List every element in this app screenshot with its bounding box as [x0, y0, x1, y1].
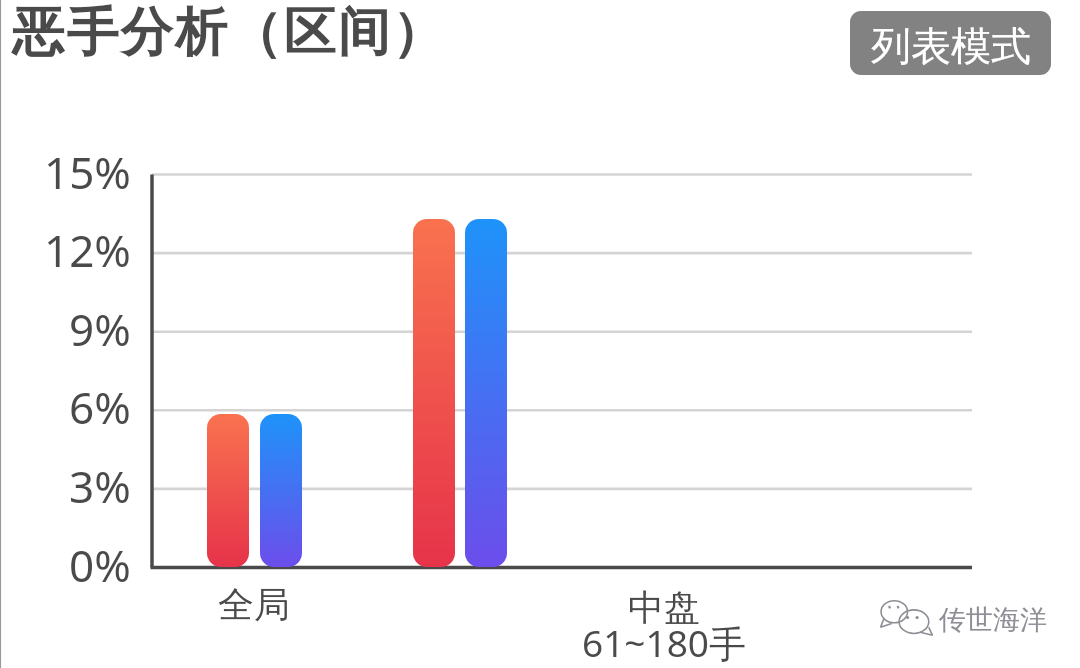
- staticText: 全局: [218, 582, 290, 627]
- staticText: 列表模式: [871, 21, 1031, 71]
- staticText: 恶手分析（区间）: [12, 0, 447, 66]
- other: 中盘 13.3% 对手恶手率: [465, 219, 507, 567]
- staticText: 61~180手: [582, 617, 746, 667]
- other: 中盘 13.3% 恶手率: [413, 219, 455, 567]
- staticText: 0%: [69, 535, 131, 587]
- staticText: 15%: [44, 142, 131, 194]
- staticText: 9%: [69, 299, 131, 351]
- staticText: 6%: [69, 377, 131, 429]
- other: 全局 5.9% 恶手率: [207, 414, 249, 567]
- other: WeChat: [880, 600, 933, 638]
- staticText: 中盘: [628, 585, 700, 630]
- other: 全局 5.9% 对手恶手率: [260, 414, 302, 567]
- staticText: 传世海洋: [939, 603, 1047, 637]
- staticText: 3%: [69, 456, 131, 508]
- staticText: 12%: [44, 220, 131, 272]
- button[interactable]: 列表模式: [850, 11, 1051, 75]
